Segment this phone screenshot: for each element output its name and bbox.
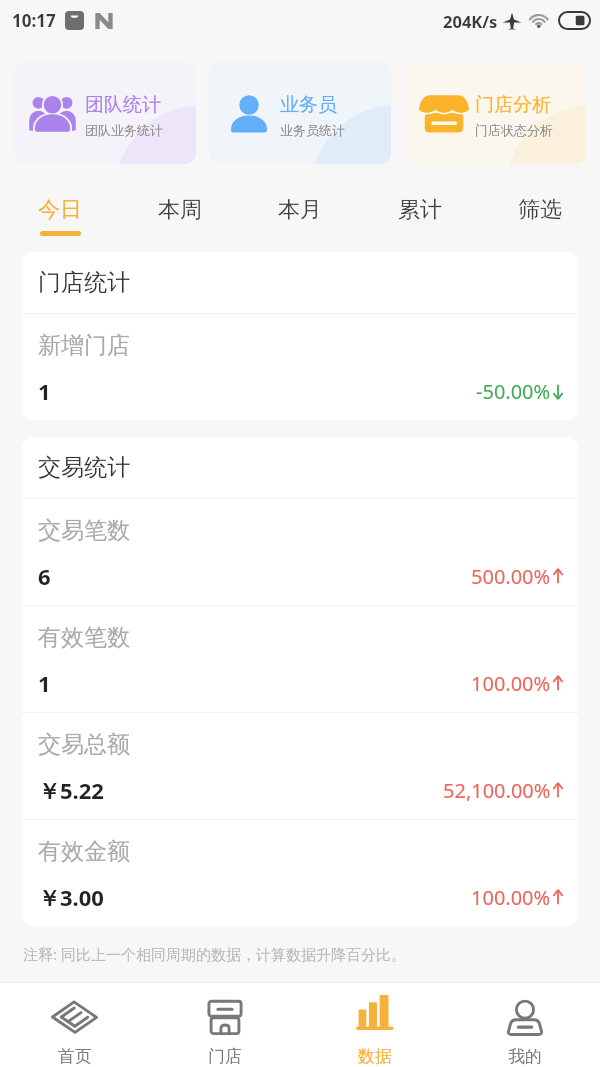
button[interactable]: 数据 <box>300 983 450 1067</box>
staticText: -50.00% <box>476 378 551 405</box>
staticText: 门店状态分析 <box>475 122 553 138</box>
staticText: ￥5.22 <box>38 775 104 805</box>
staticText: 门店分析 <box>475 93 551 117</box>
button[interactable]: 累计 <box>360 184 480 236</box>
staticText: 500.00% <box>471 563 551 590</box>
staticText: 新增门店 <box>38 331 130 360</box>
button[interactable]: 筛选 <box>480 184 600 236</box>
button[interactable]: 交易总额 <box>38 713 564 819</box>
staticText: 204K/s <box>443 10 498 32</box>
staticText: 累计 <box>398 196 442 224</box>
staticText: 6 <box>38 561 51 591</box>
staticText: 门店统计 <box>38 268 130 297</box>
staticText: 团队统计 <box>85 93 161 117</box>
staticText: 首页 <box>58 1046 92 1067</box>
staticText: 业务员 <box>280 93 337 117</box>
button[interactable]: 有效金额 <box>38 820 564 926</box>
button[interactable]: 门店分析 <box>404 62 586 164</box>
staticText: 有效金额 <box>38 837 130 866</box>
staticText: 1 <box>38 376 51 406</box>
button[interactable]: 交易笔数 <box>38 499 564 605</box>
button[interactable]: 有效笔数 <box>38 606 564 712</box>
staticText: 本周 <box>158 196 202 224</box>
button[interactable]: 新增门店 <box>38 314 564 420</box>
staticText: 今日 <box>38 196 82 224</box>
staticText: 有效笔数 <box>38 623 130 652</box>
button[interactable]: 门店 <box>150 983 300 1067</box>
staticText: ￥3.00 <box>38 882 104 912</box>
button[interactable]: 我的 <box>450 983 600 1067</box>
staticText: 业务员统计 <box>280 122 345 138</box>
staticText: 交易笔数 <box>38 516 130 545</box>
staticText: 筛选 <box>518 196 562 224</box>
button[interactable]: 本周 <box>120 184 240 236</box>
button[interactable]: 业务员 <box>209 62 391 164</box>
staticText: 交易总额 <box>38 730 130 759</box>
staticText: 10:17 <box>12 9 56 32</box>
staticText: 100.00% <box>471 670 551 697</box>
button[interactable]: 首页 <box>0 983 150 1067</box>
staticText: 我的 <box>508 1046 542 1067</box>
staticText: 交易统计 <box>38 453 130 482</box>
staticText: 门店 <box>208 1046 242 1067</box>
button[interactable]: 本月 <box>240 184 360 236</box>
staticText: 100.00% <box>471 884 551 911</box>
button[interactable]: 团队统计 <box>14 62 196 164</box>
staticText: 52,100.00% <box>443 777 551 804</box>
staticText: 团队业务统计 <box>85 122 163 138</box>
staticText: 1 <box>38 668 51 698</box>
button[interactable]: 今日 <box>0 184 120 236</box>
staticText: 注释: 同比上一个相同周期的数据，计算数据升降百分比。 <box>23 944 406 964</box>
staticText: 数据 <box>358 1046 392 1067</box>
staticText: 本月 <box>278 196 322 224</box>
